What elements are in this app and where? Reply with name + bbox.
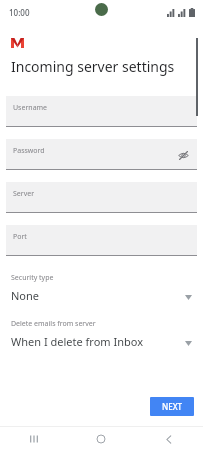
staticText: Password <box>13 146 45 156</box>
button[interactable]: Recent apps <box>0 426 67 452</box>
button[interactable]: Security type <box>11 273 192 303</box>
staticText: Incoming server settings <box>11 57 175 76</box>
staticText: Username <box>13 103 48 113</box>
staticText: 10:00 <box>9 7 30 18</box>
button[interactable]: Username <box>6 96 197 127</box>
staticText: Port <box>13 232 27 242</box>
button[interactable]: Delete emails from server <box>11 319 192 349</box>
staticText: NEXT <box>162 401 183 412</box>
button[interactable]: Port <box>6 225 197 256</box>
staticText: None <box>11 288 40 303</box>
staticText: Delete emails from server <box>11 319 96 329</box>
button[interactable]: Show password <box>176 148 190 162</box>
staticText: Server <box>13 189 35 199</box>
button[interactable]: Server <box>6 182 197 213</box>
button[interactable]: Back <box>135 426 203 452</box>
staticText: When I delete from Inbox <box>11 334 143 349</box>
button[interactable]: NEXT <box>150 397 194 416</box>
staticText: Security type <box>11 273 54 283</box>
button[interactable]: Password <box>6 139 197 170</box>
button[interactable]: Home <box>67 426 135 452</box>
